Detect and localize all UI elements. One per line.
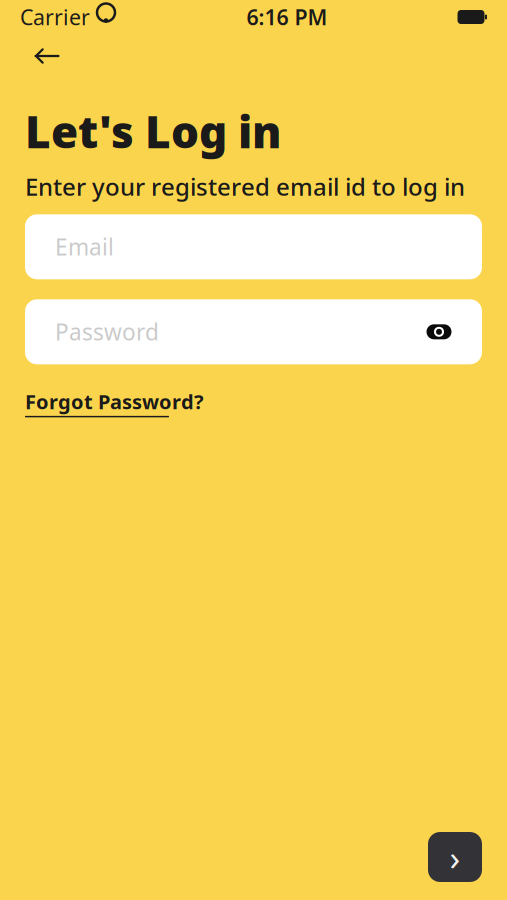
staticText: 6:16 PM — [246, 3, 327, 31]
staticText: Email — [55, 232, 114, 262]
staticText: Enter your registered email id to log in — [25, 170, 465, 202]
staticText: Let's Log in — [25, 102, 281, 160]
button[interactable]: Forgot Password? — [25, 388, 204, 417]
staticText: Carrier — [20, 3, 90, 31]
staticText: › — [449, 834, 460, 880]
staticText: Password — [55, 317, 159, 347]
button[interactable]: Email — [25, 214, 482, 279]
button[interactable]: Back — [25, 36, 69, 76]
staticText: Forgot Password? — [25, 388, 204, 415]
button[interactable]: Next — [428, 832, 482, 882]
button[interactable]: Password — [25, 299, 482, 364]
